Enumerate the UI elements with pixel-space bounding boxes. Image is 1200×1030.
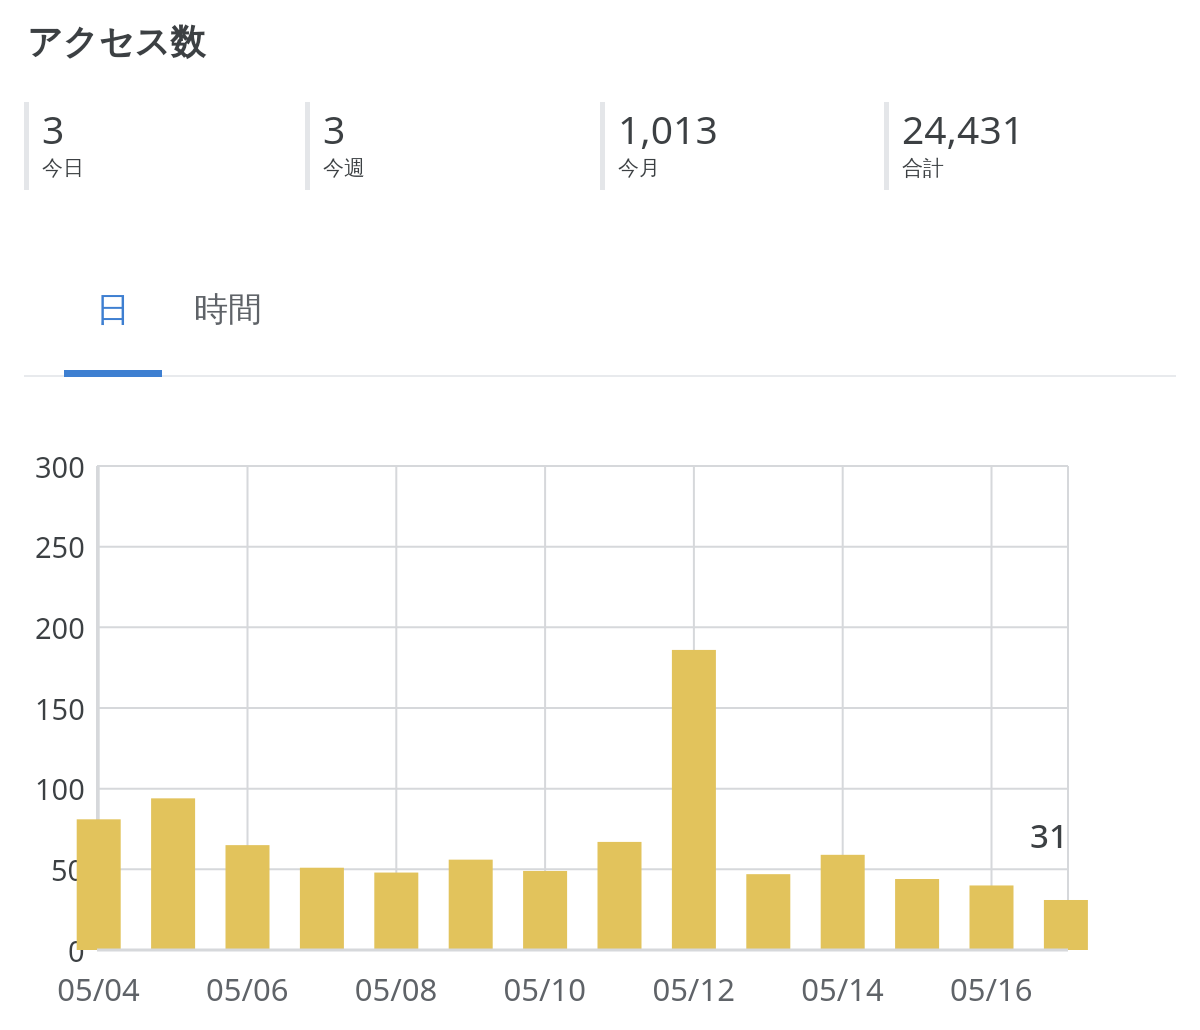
staticText: 今週 [323, 155, 365, 181]
staticText: 3 [323, 102, 346, 155]
staticText: アクセス数 [27, 20, 206, 64]
staticText: 今日 [42, 155, 84, 181]
button[interactable]: 1,013 [600, 102, 718, 190]
button[interactable]: 24,431 [884, 102, 1024, 190]
staticText: 今月 [618, 155, 660, 181]
staticText: 1,013 [618, 102, 718, 155]
staticText: 日 [96, 288, 130, 331]
button[interactable]: 3 [24, 102, 84, 190]
staticText: 時間 [194, 288, 262, 331]
staticText: 24,431 [902, 102, 1024, 155]
staticText: 合計 [902, 155, 944, 181]
button[interactable]: 時間 [168, 288, 288, 377]
button[interactable]: 3 [305, 102, 365, 190]
staticText: 3 [42, 102, 65, 155]
button[interactable]: 日 [64, 288, 162, 377]
